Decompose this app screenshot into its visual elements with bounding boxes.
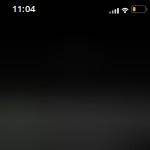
button[interactable]: Photo	[0, 0, 150, 150]
staticText: 11:04	[12, 2, 35, 15]
